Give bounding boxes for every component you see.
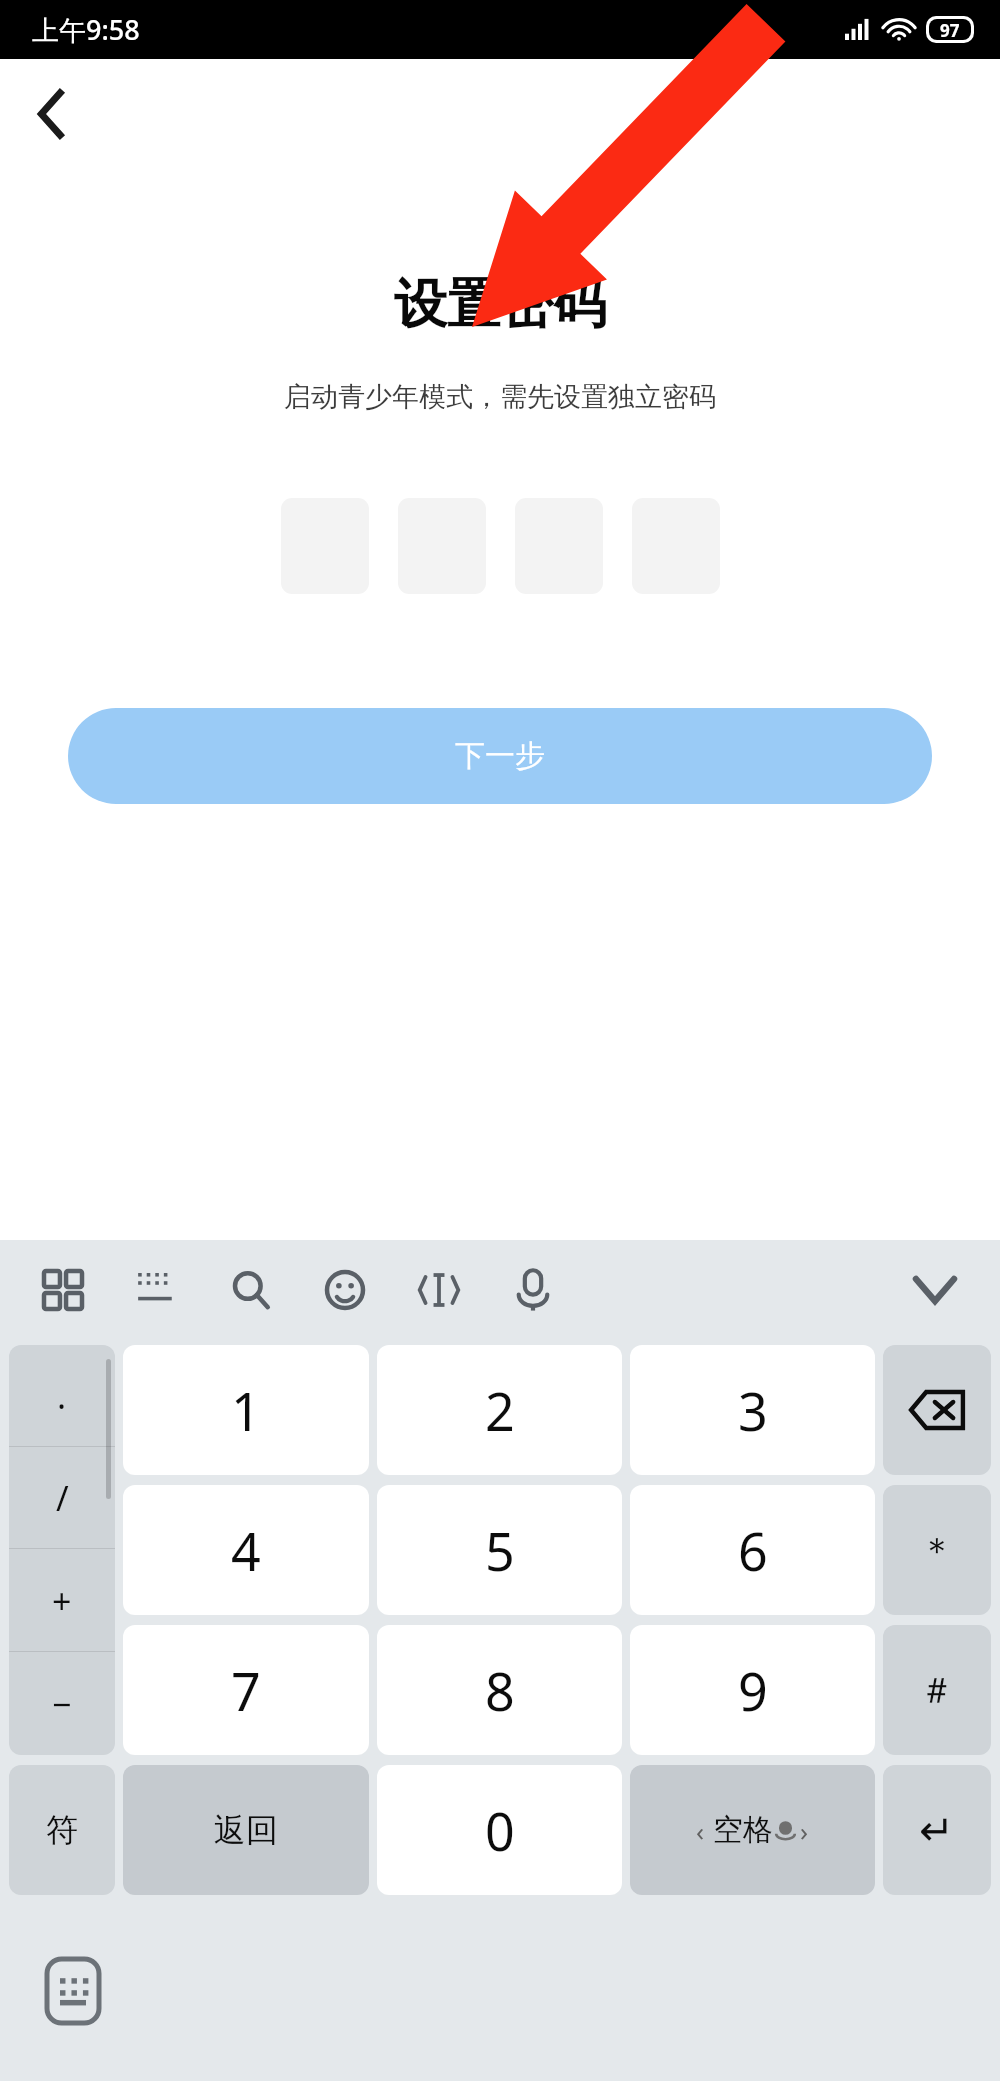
staticText: − <box>52 1681 72 1727</box>
button[interactable]: Keyboard layout <box>110 1247 204 1333</box>
button[interactable]: ＊ <box>883 1485 991 1615</box>
staticText: 8 <box>485 1655 515 1726</box>
staticText: 0 <box>485 1795 515 1866</box>
staticText: 返回 <box>214 1810 278 1850</box>
button[interactable]: ‹ <box>630 1765 875 1895</box>
staticText: 5 <box>485 1515 515 1586</box>
button[interactable]: − <box>9 1652 115 1755</box>
staticText: 2 <box>485 1375 515 1446</box>
staticText: 9 <box>738 1655 768 1726</box>
button[interactable]: Switch input method <box>38 1951 108 2031</box>
staticText: 7 <box>231 1655 261 1726</box>
staticText: 上午9:58 <box>32 11 140 48</box>
staticText: ＃ <box>919 1668 955 1713</box>
button[interactable]: Enter <box>883 1765 991 1895</box>
button[interactable]: 3 <box>630 1345 875 1475</box>
staticText: 设置密码 <box>0 271 1000 338</box>
staticText: 空格 <box>713 1811 773 1849</box>
button[interactable]: 5 <box>377 1485 622 1615</box>
button[interactable]: Edit text <box>392 1247 486 1333</box>
button[interactable]: Hide keyboard <box>896 1251 974 1329</box>
button[interactable]: 7 <box>123 1625 369 1755</box>
button[interactable]: Delete <box>883 1345 991 1475</box>
button[interactable]: Back <box>20 83 82 145</box>
button[interactable]: ＃ <box>883 1625 991 1755</box>
staticText: / <box>56 1475 69 1521</box>
button[interactable]: Emoji <box>298 1247 392 1333</box>
staticText: . <box>57 1373 67 1419</box>
staticText: › <box>800 1813 809 1848</box>
button[interactable]: 2 <box>377 1345 622 1475</box>
staticText: 1 <box>231 1375 261 1446</box>
button[interactable]: 0 <box>377 1765 622 1895</box>
button[interactable]: 返回 <box>123 1765 369 1895</box>
staticText: 3 <box>738 1375 768 1446</box>
staticText: + <box>52 1578 72 1624</box>
button[interactable]: . <box>9 1345 115 1447</box>
button[interactable]: 符 <box>9 1765 115 1895</box>
button[interactable]: 6 <box>630 1485 875 1615</box>
button[interactable]: 8 <box>377 1625 622 1755</box>
staticText: ＊ <box>919 1528 955 1573</box>
button[interactable]: 1 <box>123 1345 369 1475</box>
button[interactable]: 下一步 <box>68 708 932 804</box>
button[interactable]: 4 <box>123 1485 369 1615</box>
button[interactable]: 9 <box>630 1625 875 1755</box>
staticText: 6 <box>738 1515 768 1586</box>
staticText: 下一步 <box>455 737 545 775</box>
button[interactable]: / <box>9 1447 115 1549</box>
staticText: 4 <box>231 1515 261 1586</box>
button[interactable]: Panels <box>16 1247 110 1333</box>
staticText: ↵ <box>919 1806 955 1855</box>
button[interactable]: Voice input <box>486 1247 580 1333</box>
staticText: 符 <box>46 1810 78 1850</box>
staticText: 97 <box>940 19 960 40</box>
button[interactable]: Search <box>204 1247 298 1333</box>
staticText: ‹ <box>696 1813 705 1848</box>
button[interactable]: + <box>9 1549 115 1652</box>
staticText: 启动青少年模式，需先设置独立密码 <box>0 380 1000 414</box>
